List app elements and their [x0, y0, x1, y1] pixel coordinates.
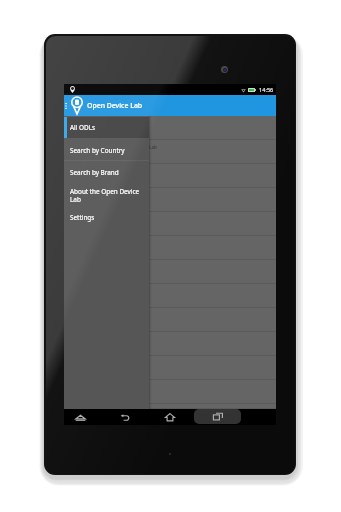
button[interactable] — [64, 308, 276, 332]
button[interactable]: All ODLs — [64, 117, 149, 138]
button[interactable]: Search by Country — [64, 139, 149, 161]
button[interactable]: Hide keyboard — [70, 409, 90, 425]
button[interactable] — [64, 380, 276, 404]
button[interactable] — [64, 212, 276, 236]
button[interactable] — [64, 116, 276, 140]
button[interactable] — [64, 284, 276, 308]
button[interactable]: Home — [160, 409, 180, 425]
button[interactable] — [64, 356, 276, 380]
staticText: 14:56 — [259, 86, 274, 94]
button[interactable] — [64, 236, 276, 260]
button[interactable]: Recent apps — [194, 409, 241, 424]
staticText: Settings — [70, 213, 95, 222]
staticText: Search by Brand — [70, 168, 119, 177]
button[interactable]: Settings — [64, 206, 149, 228]
staticText: Lab — [149, 144, 157, 150]
button[interactable] — [64, 332, 276, 356]
button[interactable] — [64, 404, 276, 409]
button[interactable] — [64, 260, 276, 284]
button[interactable] — [64, 188, 276, 212]
staticText: About the Open Device Lab — [70, 187, 145, 204]
button[interactable] — [64, 140, 276, 164]
staticText: Open Device Lab — [87, 101, 143, 110]
button[interactable]: About the Open Device Lab — [64, 182, 149, 208]
button[interactable] — [64, 164, 276, 188]
staticText: Search by Country — [70, 146, 125, 155]
button[interactable]: Open navigation drawer — [64, 95, 68, 116]
button[interactable]: Back — [115, 409, 135, 425]
button[interactable]: Search by Brand — [64, 161, 149, 183]
staticText: All ODLs — [70, 123, 96, 132]
